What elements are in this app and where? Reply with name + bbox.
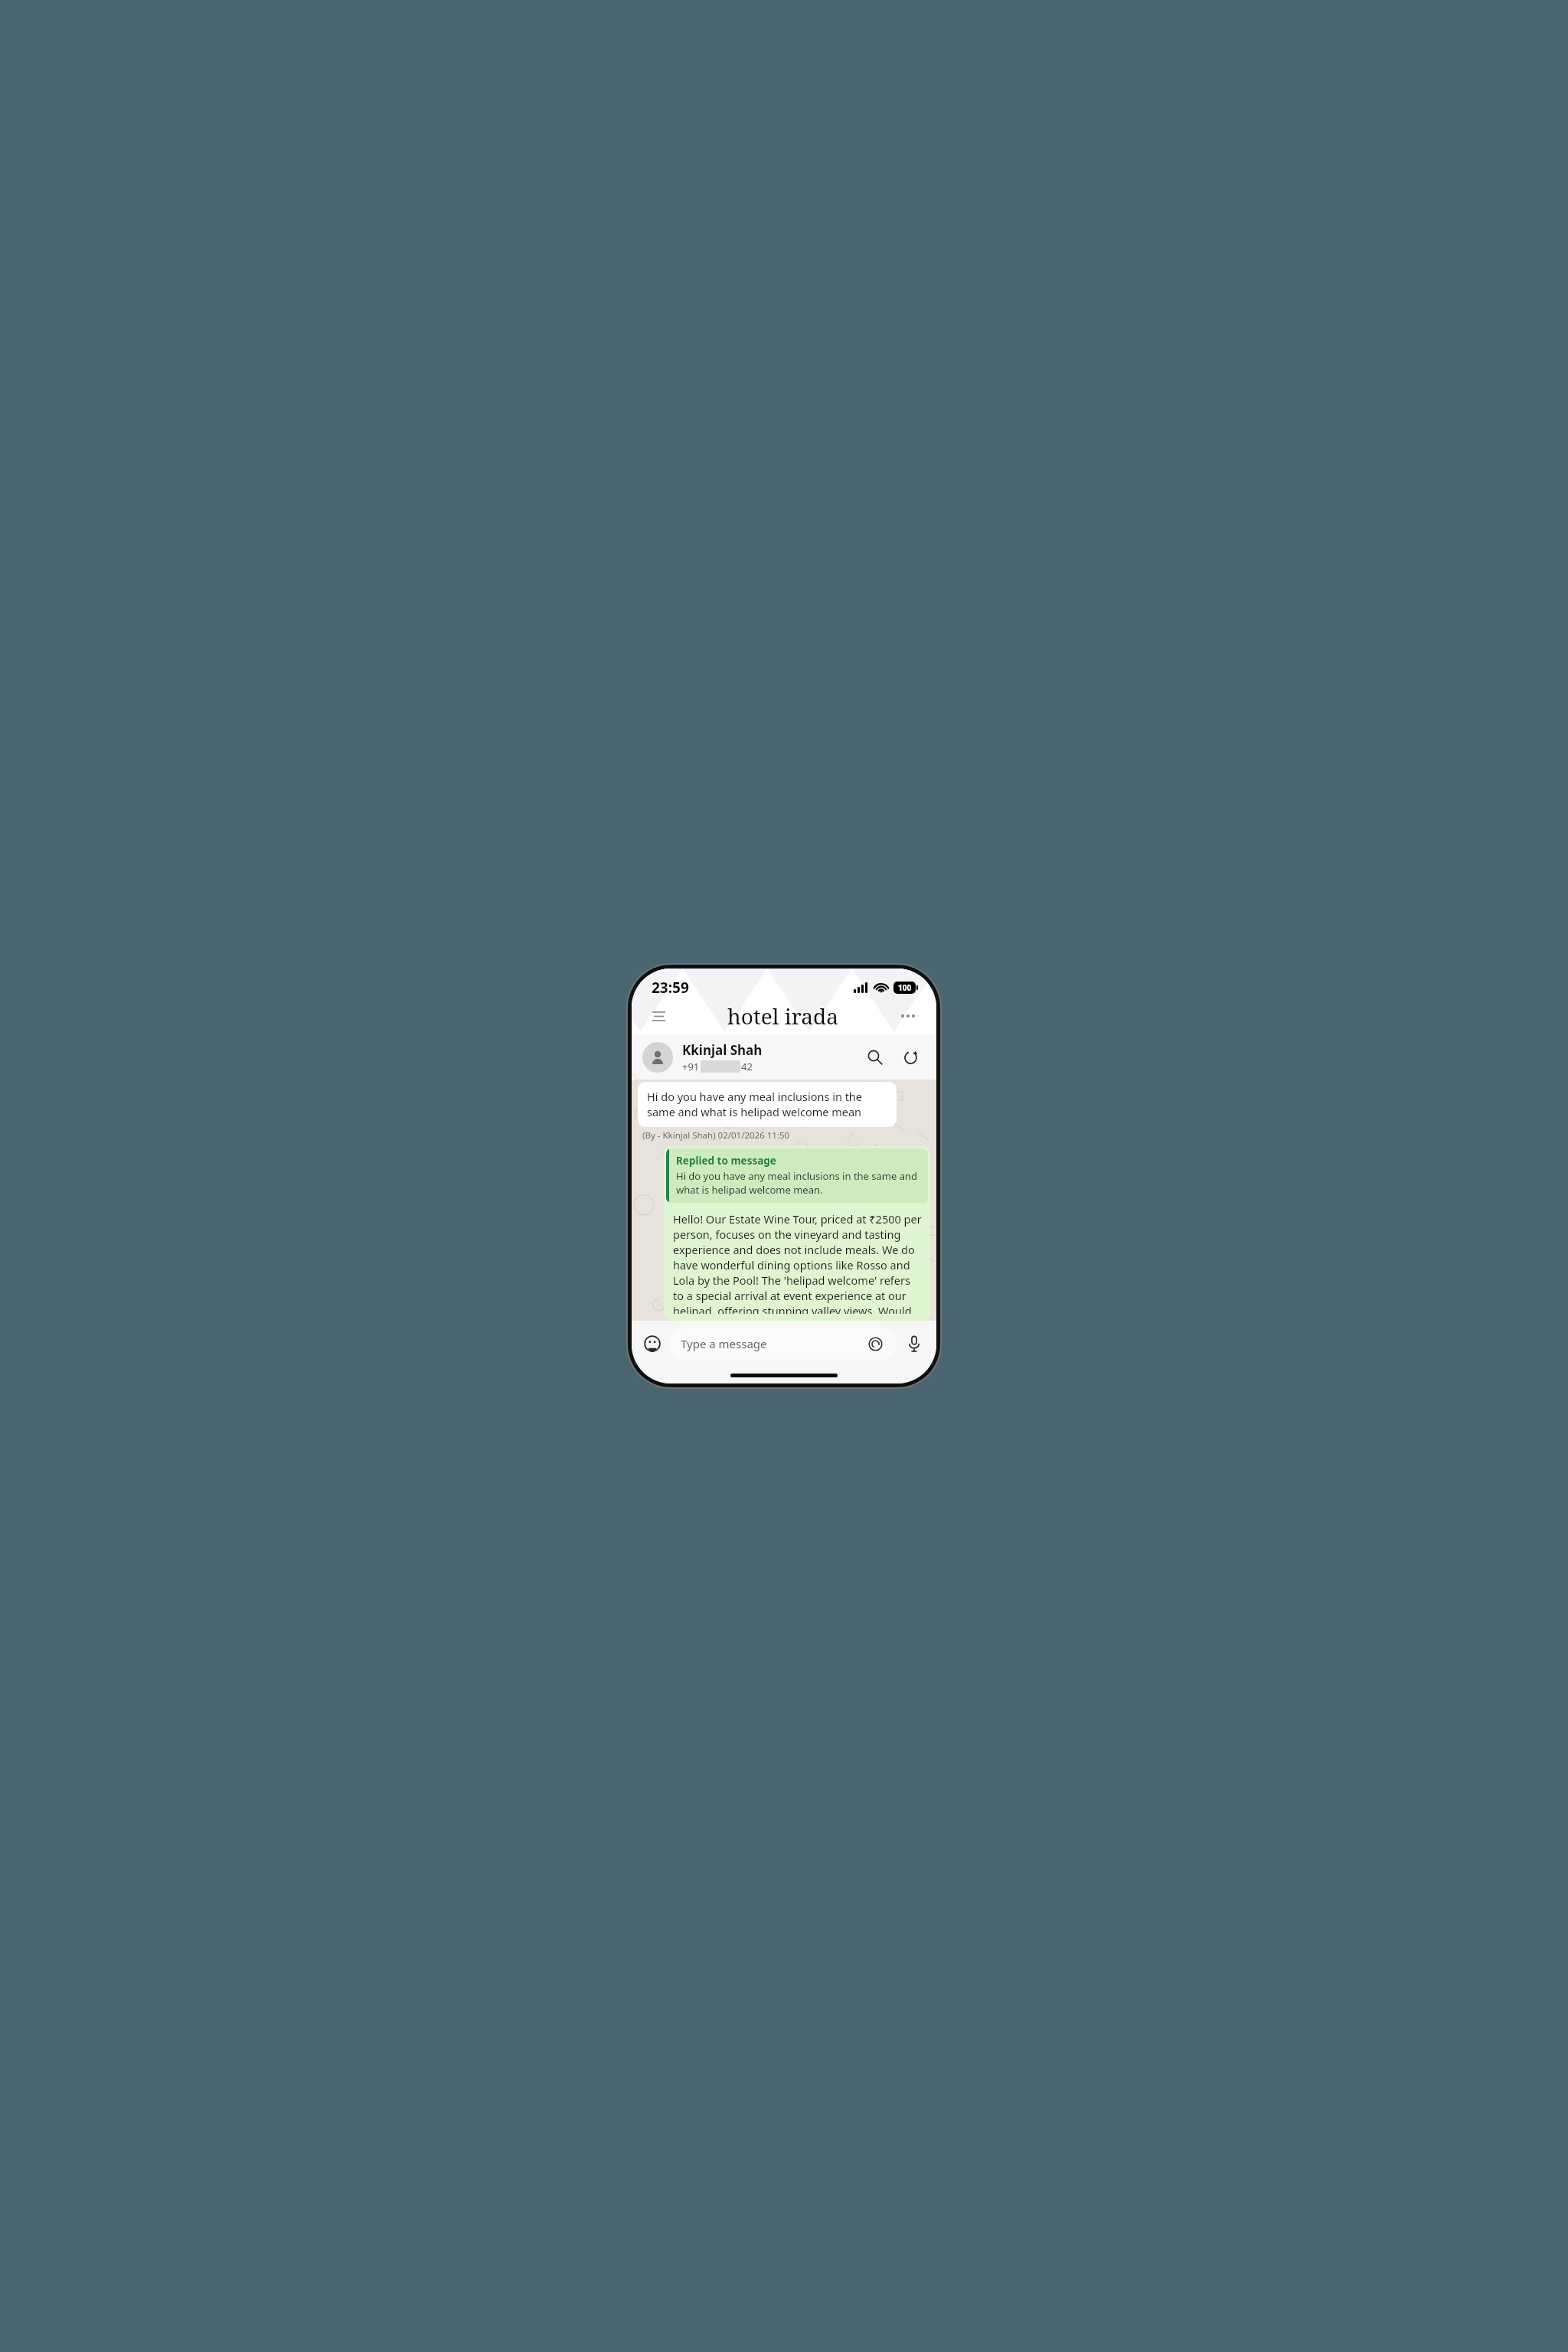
other: Attach: [866, 1334, 884, 1353]
button[interactable]: Type a message: [668, 1328, 897, 1360]
button[interactable]: Voice message: [901, 1331, 927, 1357]
button[interactable]: Refresh: [895, 1042, 926, 1073]
staticText: hotel irada: [727, 1001, 839, 1031]
button[interactable]: Search: [860, 1042, 890, 1073]
button[interactable]: Replied to message: [664, 1146, 930, 1321]
staticText: Hi do you have any meal inclusions in th…: [676, 1169, 922, 1197]
button[interactable]: Contact avatar: [642, 1042, 673, 1073]
staticText: Hello! Our Estate Wine Tour, priced at ₹…: [673, 1211, 923, 1314]
staticText: +91: [682, 1060, 700, 1073]
button[interactable]: Menu: [645, 1003, 671, 1029]
staticText: Replied to message: [676, 1154, 776, 1168]
staticText: Type a message: [681, 1336, 767, 1351]
button[interactable]: Emoji: [641, 1332, 664, 1355]
staticText: 100: [898, 982, 912, 993]
staticText: 42: [741, 1060, 753, 1073]
staticText: (By - Kkinjal Shah) 02/01/2026 11:50: [642, 1129, 790, 1142]
staticText: Hi do you have any meal inclusions in th…: [647, 1089, 889, 1119]
button[interactable]: Hi do you have any meal inclusions in th…: [638, 1082, 897, 1127]
staticText: Kkinjal Shah: [682, 1041, 763, 1059]
staticText: 23:59: [652, 978, 689, 998]
button[interactable]: More options: [895, 1003, 921, 1029]
